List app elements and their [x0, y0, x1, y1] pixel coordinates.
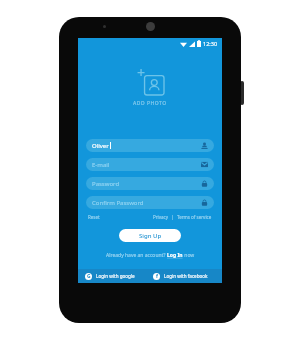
- button[interactable]: G: [78, 269, 150, 283]
- staticText: Password: [92, 180, 120, 188]
- button[interactable]: Confirm Password: [86, 196, 214, 209]
- button[interactable]: Reset: [88, 214, 100, 220]
- button[interactable]: f: [150, 269, 222, 283]
- staticText: Confirm Password: [92, 199, 144, 207]
- staticText: Login with google: [96, 273, 135, 279]
- staticText: now: [183, 252, 195, 259]
- staticText: E-mail: [92, 161, 110, 169]
- button[interactable]: E-mail: [86, 158, 214, 171]
- button[interactable]: Password: [86, 177, 214, 190]
- staticText: G: [87, 273, 91, 280]
- staticText: Log In: [167, 252, 183, 259]
- button[interactable]: Privacy: [153, 214, 169, 220]
- staticText: ADD PHOTO: [133, 100, 167, 107]
- staticText: Login with facebook: [164, 273, 208, 279]
- staticText: f: [156, 273, 158, 280]
- button[interactable]: Terms of service: [177, 214, 212, 220]
- staticText: Already have an account?: [106, 252, 167, 259]
- button[interactable]: Oliver: [86, 139, 214, 152]
- staticText: 12:30: [203, 40, 218, 47]
- button[interactable]: Add photo: [137, 68, 164, 95]
- staticText: |: [169, 214, 177, 220]
- button[interactable]: Already have an account?: [78, 252, 222, 259]
- button[interactable]: Sign Up: [119, 229, 181, 242]
- staticText: Oliver: [92, 142, 109, 150]
- staticText: Sign Up: [139, 232, 162, 240]
